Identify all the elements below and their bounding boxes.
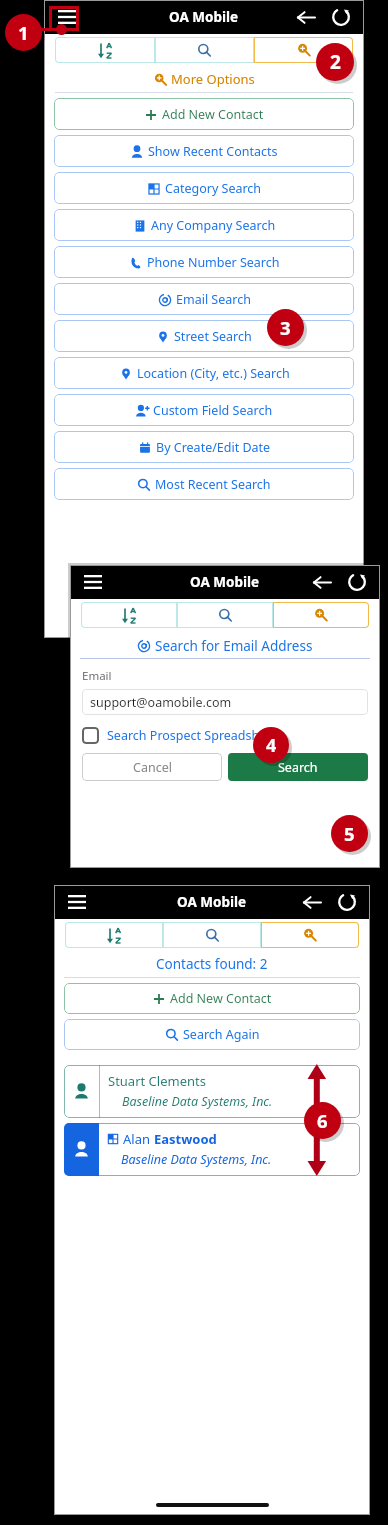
staticText: Eastwood bbox=[154, 1130, 217, 1148]
button[interactable]: Search for Email Address bbox=[137, 637, 313, 655]
staticText: Search bbox=[278, 759, 318, 776]
button[interactable]: Stuart Clements bbox=[64, 1065, 360, 1118]
button[interactable]: Search bbox=[163, 922, 261, 948]
button[interactable]: Sort bbox=[55, 37, 155, 63]
staticText: Search for Email Address bbox=[155, 637, 313, 655]
staticText: Add New Contact bbox=[162, 106, 264, 123]
button[interactable]: Refresh bbox=[326, 2, 356, 32]
staticText: Custom Field Search bbox=[153, 402, 273, 419]
button[interactable]: Cancel bbox=[82, 753, 222, 781]
button[interactable]: Search bbox=[177, 602, 273, 628]
button[interactable]: Refresh bbox=[332, 887, 362, 917]
staticText: Location (City, etc.) Search bbox=[137, 365, 290, 382]
button[interactable]: Most Recent Search bbox=[54, 468, 354, 500]
button[interactable]: Any Company Search bbox=[54, 209, 354, 241]
button[interactable]: More search options bbox=[261, 922, 359, 948]
button[interactable]: Category Search bbox=[54, 172, 354, 204]
button[interactable]: Email Search bbox=[54, 283, 354, 315]
staticText: 6 bbox=[317, 1108, 328, 1133]
staticText: 1 bbox=[18, 20, 29, 45]
staticText: Cancel bbox=[133, 759, 172, 776]
staticText: Street Search bbox=[174, 328, 252, 345]
button[interactable]: Location (City, etc.) Search bbox=[54, 357, 354, 389]
button[interactable]: More search options bbox=[273, 602, 369, 628]
button[interactable]: Menu bbox=[64, 889, 90, 915]
button[interactable]: Add New Contact bbox=[64, 983, 360, 1014]
button[interactable]: Search bbox=[155, 37, 254, 63]
staticText: 4 bbox=[266, 733, 277, 758]
button[interactable]: Sort bbox=[65, 922, 163, 948]
staticText: Show Recent Contacts bbox=[148, 143, 278, 160]
button[interactable]: More search options bbox=[254, 37, 353, 63]
staticText: 2 bbox=[330, 49, 341, 75]
staticText: Stuart Clements bbox=[108, 1072, 206, 1090]
button[interactable]: Menu bbox=[80, 569, 106, 595]
staticText: Contacts found: 2 bbox=[156, 955, 268, 973]
button[interactable]: support@oamobile.com bbox=[82, 689, 368, 715]
staticText: 5 bbox=[344, 821, 355, 846]
button[interactable]: Back bbox=[306, 567, 336, 597]
button[interactable]: Back bbox=[290, 2, 320, 32]
staticText: OA Mobile bbox=[190, 573, 260, 591]
staticText: Most Recent Search bbox=[155, 476, 271, 493]
button[interactable]: Show Recent Contacts bbox=[54, 135, 354, 167]
staticText: Baseline Data Systems, Inc. bbox=[121, 1151, 272, 1168]
staticText: Baseline Data Systems, Inc. bbox=[122, 1093, 273, 1110]
button[interactable]: By Create/Edit Date bbox=[54, 431, 354, 463]
button[interactable]: Search bbox=[228, 753, 368, 781]
staticText: Add New Contact bbox=[170, 990, 272, 1007]
staticText: By Create/Edit Date bbox=[156, 439, 271, 456]
button[interactable]: Add New Contact bbox=[54, 98, 354, 130]
staticText: Phone Number Search bbox=[147, 254, 280, 271]
button[interactable]: Custom Field Search bbox=[54, 394, 354, 426]
button[interactable]: More Options bbox=[154, 70, 255, 88]
button[interactable]: Sort bbox=[81, 602, 177, 628]
button[interactable]: Search Prospect Spreadsheet bbox=[82, 727, 278, 744]
button[interactable]: Back bbox=[296, 887, 326, 917]
staticText: More Options bbox=[171, 70, 255, 88]
button[interactable]: Menu bbox=[54, 4, 80, 30]
button[interactable]: Search Again bbox=[64, 1019, 360, 1050]
button[interactable]: Refresh bbox=[342, 567, 372, 597]
staticText: Alan bbox=[123, 1130, 154, 1148]
button[interactable]: Phone Number Search bbox=[54, 246, 354, 278]
staticText: Email bbox=[82, 668, 112, 684]
staticText: Email Search bbox=[176, 291, 251, 308]
button[interactable]: Alan bbox=[64, 1123, 360, 1176]
staticText: Search Again bbox=[183, 1026, 260, 1043]
staticText: Category Search bbox=[165, 180, 262, 197]
staticText: OA Mobile bbox=[177, 893, 247, 911]
staticText: OA Mobile bbox=[169, 8, 239, 26]
staticText: support@oamobile.com bbox=[90, 694, 232, 711]
staticText: Search Prospect Spreadsheet bbox=[107, 727, 278, 744]
staticText: 3 bbox=[280, 315, 291, 340]
staticText: Any Company Search bbox=[151, 217, 276, 234]
button[interactable]: Street Search bbox=[54, 320, 354, 352]
